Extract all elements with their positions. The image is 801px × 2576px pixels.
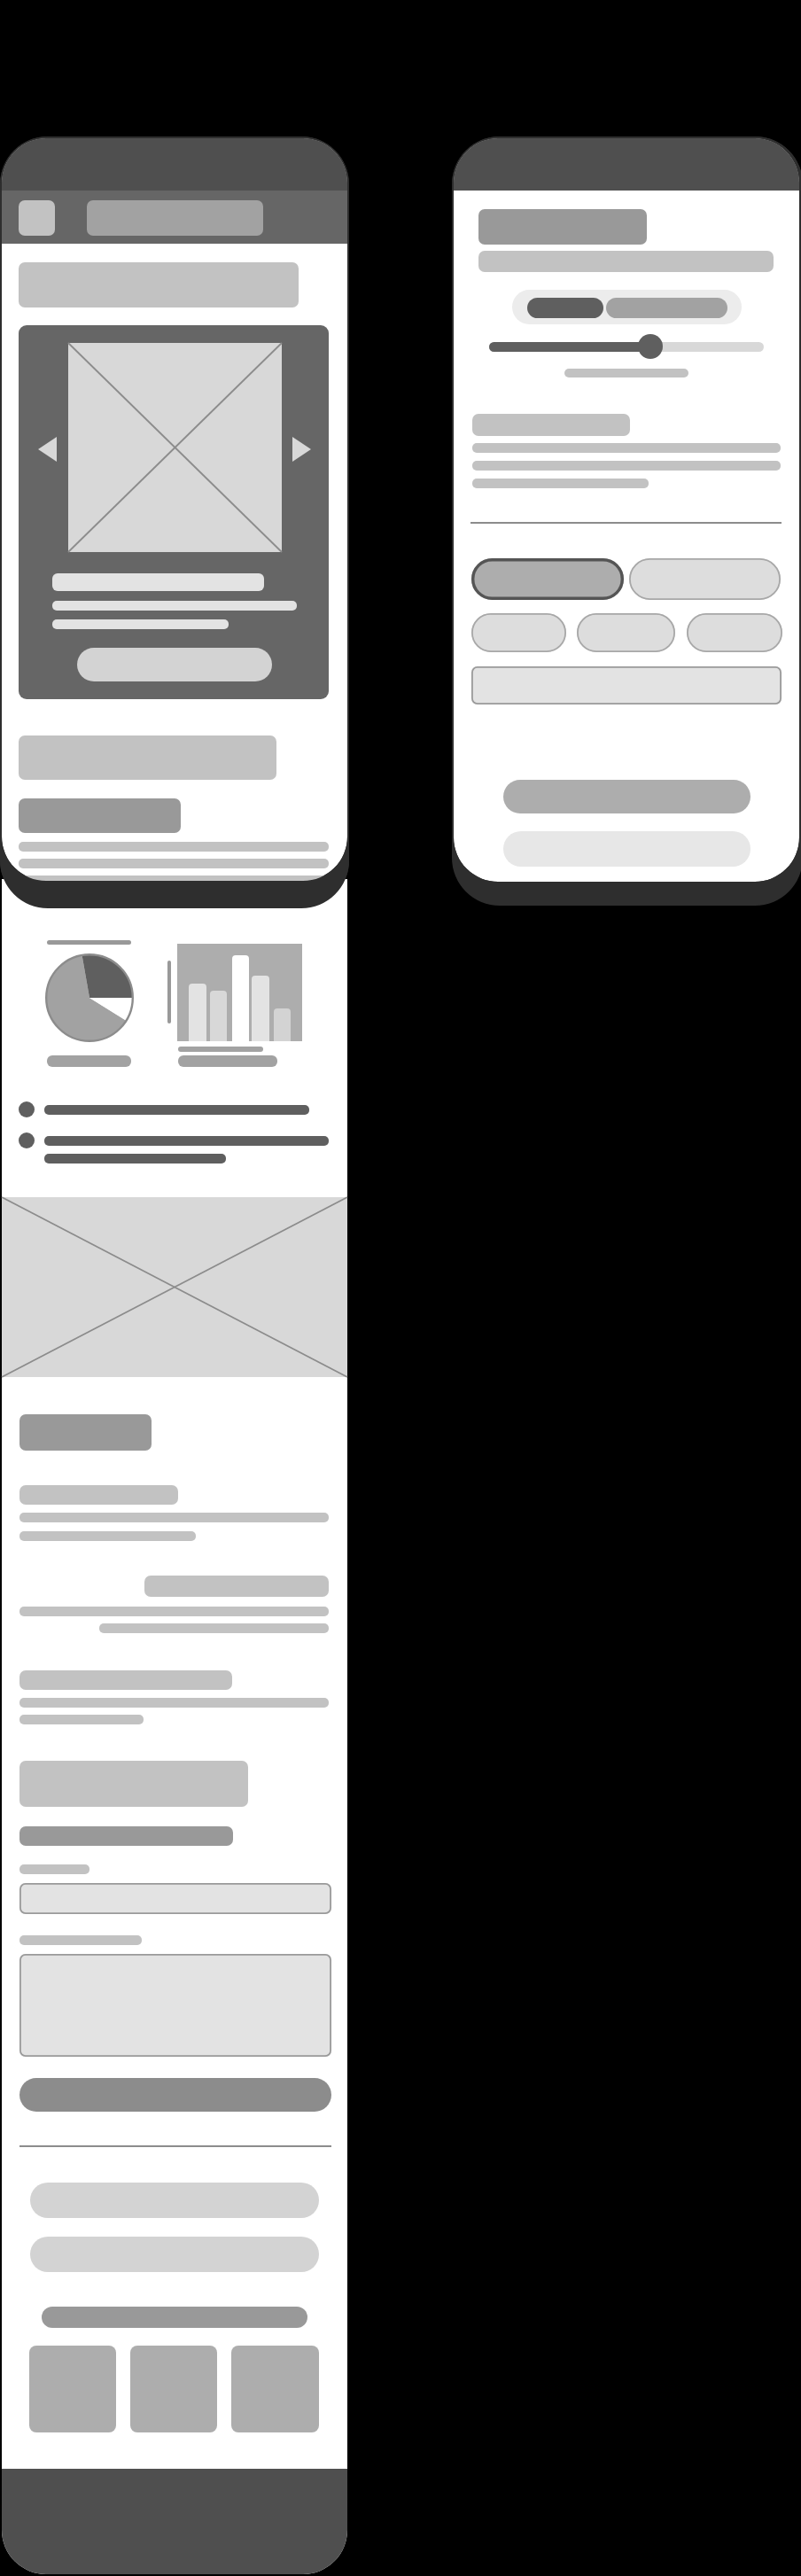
button[interactable] [527, 298, 603, 318]
button[interactable] [478, 209, 647, 245]
button[interactable] [606, 298, 727, 318]
button[interactable] [629, 558, 781, 600]
button[interactable] [471, 613, 566, 652]
button[interactable]: Menu [19, 200, 55, 236]
button[interactable] [19, 1954, 331, 2057]
button[interactable] [503, 780, 750, 813]
button[interactable]: Search [19, 262, 299, 307]
button[interactable]: Slider handle [638, 334, 663, 359]
button[interactable] [30, 2183, 319, 2218]
button[interactable] [19, 1883, 331, 1914]
button[interactable]: Next image [292, 437, 311, 462]
button[interactable] [471, 666, 782, 704]
button[interactable] [29, 2346, 116, 2432]
button[interactable] [471, 558, 624, 600]
button[interactable] [577, 613, 675, 652]
button[interactable] [687, 613, 782, 652]
button[interactable] [30, 2237, 319, 2272]
button[interactable] [77, 648, 272, 681]
button[interactable] [19, 2078, 331, 2112]
button[interactable] [503, 831, 750, 867]
button[interactable] [231, 2346, 319, 2432]
button[interactable]: Previous image [38, 437, 57, 462]
button[interactable] [130, 2346, 217, 2432]
